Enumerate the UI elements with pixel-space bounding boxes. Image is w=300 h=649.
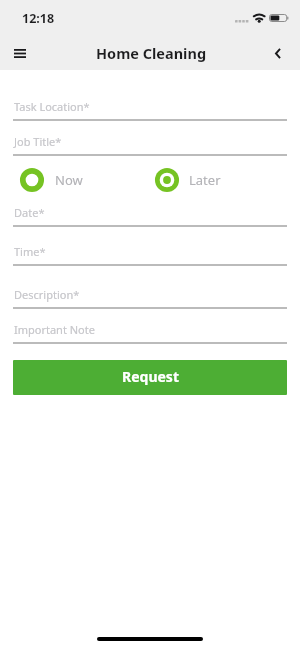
- staticText: Task Location*: [14, 99, 90, 114]
- staticText: Job Title*: [14, 134, 62, 149]
- staticText: Description*: [14, 287, 80, 302]
- button[interactable]: Later: [155, 166, 221, 194]
- button[interactable]: Task Location*: [13, 99, 287, 121]
- button[interactable]: Date*: [13, 205, 287, 227]
- button[interactable]: Back: [261, 36, 295, 70]
- button[interactable]: Now: [20, 166, 83, 194]
- staticText: 12:18: [22, 10, 55, 27]
- staticText: Later: [189, 171, 221, 189]
- button[interactable]: Important Note: [13, 322, 287, 344]
- button[interactable]: Menu: [3, 36, 37, 70]
- button[interactable]: Job Title*: [13, 134, 287, 156]
- staticText: Important Note: [14, 322, 95, 337]
- button[interactable]: Description*: [13, 287, 287, 309]
- staticText: Date*: [14, 205, 45, 220]
- staticText: Time*: [14, 244, 46, 259]
- button[interactable]: Time*: [13, 244, 287, 266]
- button[interactable]: Request: [13, 360, 287, 395]
- staticText: Home Cleaning: [96, 43, 207, 63]
- staticText: Now: [55, 171, 83, 189]
- staticText: Request: [122, 367, 179, 386]
